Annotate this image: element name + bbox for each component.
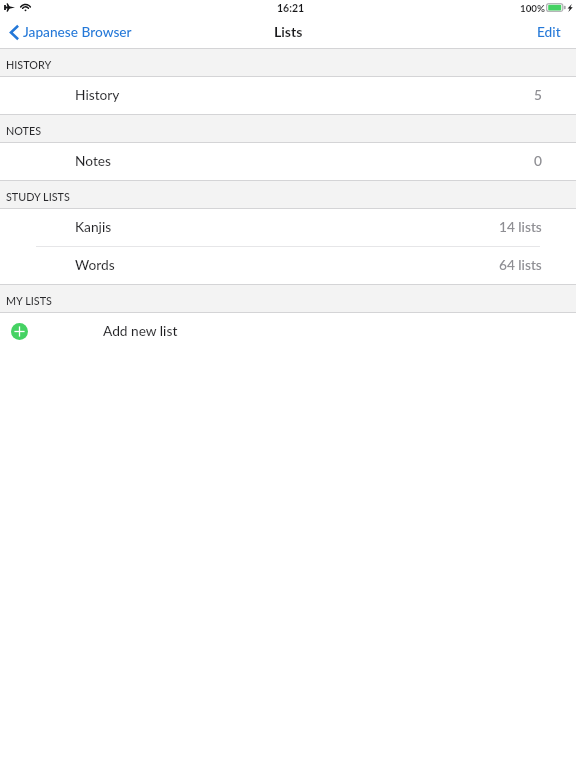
- other: Wi-Fi: [20, 3, 31, 11]
- other: Back: [10, 25, 19, 40]
- staticText: 64 lists: [499, 256, 542, 272]
- staticText: HISTORY: [6, 58, 52, 71]
- staticText: 0: [534, 152, 542, 168]
- staticText: 14 lists: [499, 218, 542, 234]
- other: Airplane mode: [4, 3, 15, 12]
- button[interactable]: History: [0, 77, 576, 115]
- staticText: 5: [534, 86, 542, 102]
- button[interactable]: Words: [0, 247, 576, 285]
- button[interactable]: Edit: [523, 20, 576, 49]
- button[interactable]: Kanjis: [0, 209, 576, 247]
- staticText: Add new list: [103, 322, 178, 338]
- staticText: Lists: [274, 23, 303, 40]
- other: Add: [11, 323, 28, 340]
- staticText: STUDY LISTS: [6, 190, 70, 203]
- staticText: MY LISTS: [6, 294, 52, 307]
- staticText: Japanese Browser: [23, 23, 132, 39]
- staticText: 100%: [520, 2, 546, 14]
- button[interactable]: Add: [0, 313, 576, 351]
- button[interactable]: Notes: [0, 143, 576, 181]
- staticText: Edit: [537, 23, 561, 39]
- staticText: 16:21: [277, 2, 305, 15]
- staticText: Words: [75, 256, 115, 272]
- button[interactable]: Back: [0, 20, 140, 49]
- staticText: Notes: [75, 152, 112, 168]
- staticText: History: [75, 86, 120, 102]
- staticText: Kanjis: [75, 218, 112, 234]
- staticText: NOTES: [6, 124, 42, 137]
